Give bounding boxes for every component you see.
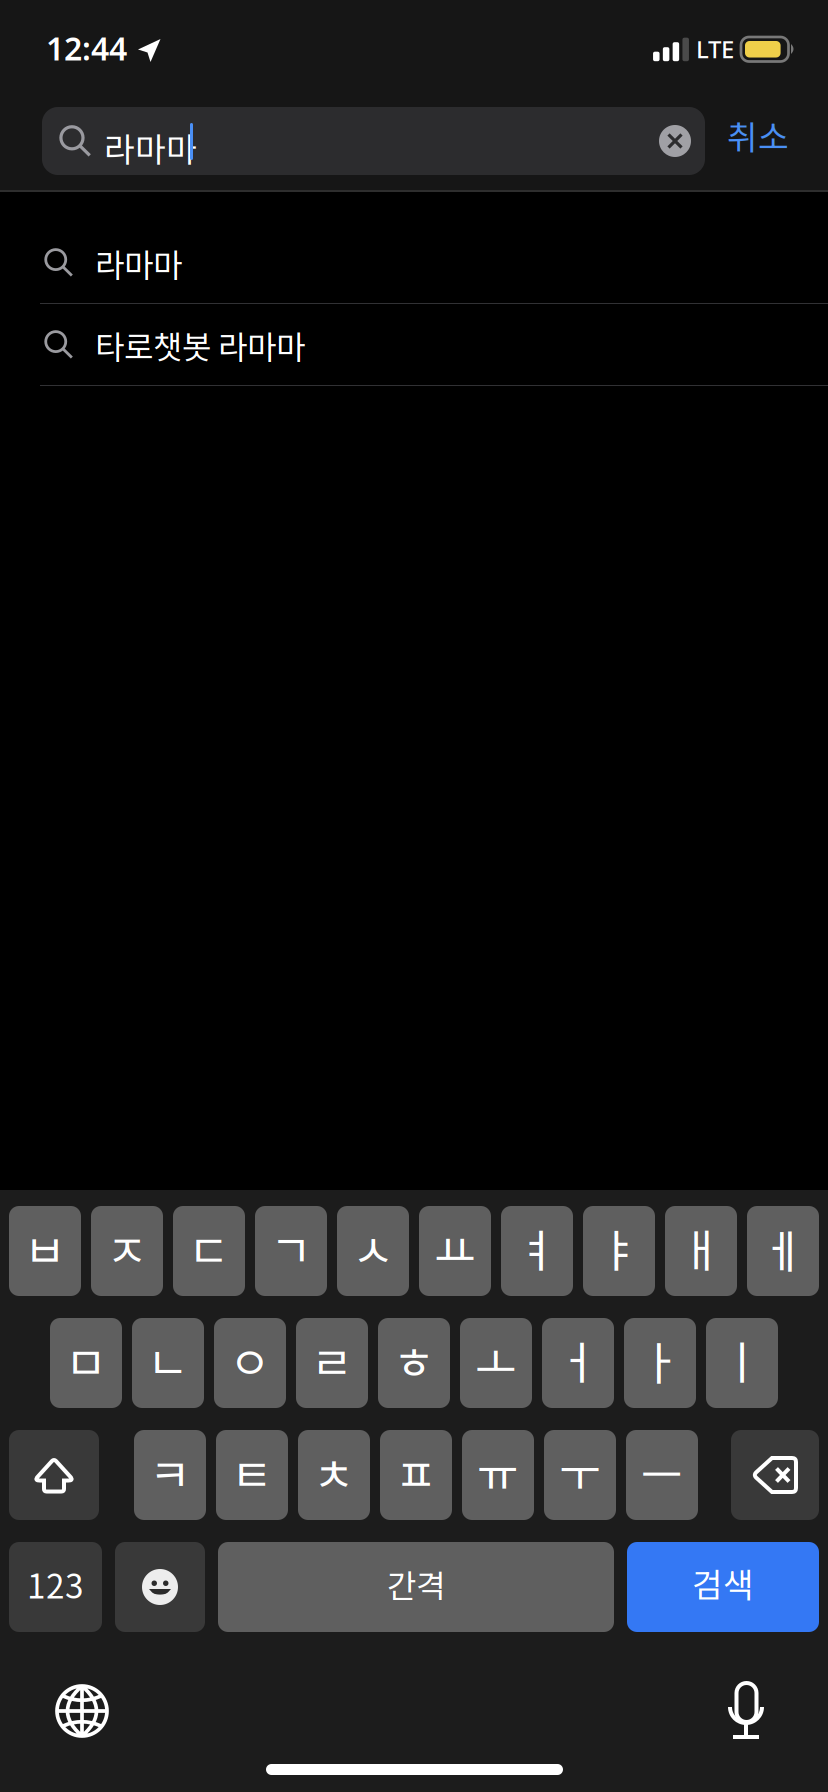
staticText: ㅌ (231, 1439, 273, 1505)
button[interactable]: ㅓ (542, 1318, 614, 1408)
staticText: ㅎ (393, 1327, 435, 1393)
button[interactable]: ㅈ (91, 1206, 163, 1296)
button[interactable]: Switch keyboard (39, 1668, 125, 1754)
button[interactable]: ㅍ (380, 1430, 452, 1520)
staticText: ㅔ (762, 1215, 804, 1281)
button[interactable]: ㅏ (624, 1318, 696, 1408)
staticText: ㅍ (395, 1439, 437, 1505)
staticText: ㄹ (311, 1327, 353, 1393)
staticText: 123 (27, 1560, 84, 1608)
staticText: 라마마 (95, 240, 182, 286)
button[interactable]: 타로챗봇 라마마 (0, 304, 828, 386)
staticText: ㅂ (24, 1215, 66, 1281)
staticText: 12:44 (46, 27, 127, 69)
staticText: ㄷ (188, 1215, 230, 1281)
button[interactable]: ㄱ (255, 1206, 327, 1296)
staticText: ㅇ (229, 1327, 271, 1393)
button[interactable]: ㅜ (544, 1430, 616, 1520)
staticText: ㅜ (559, 1439, 601, 1505)
button[interactable]: ㄴ (132, 1318, 204, 1408)
button[interactable]: ㅂ (9, 1206, 81, 1296)
staticText: ㅛ (434, 1215, 476, 1281)
staticText: ㅠ (477, 1439, 519, 1505)
staticText: ㅋ (149, 1439, 191, 1505)
button[interactable]: ㅁ (50, 1318, 122, 1408)
button[interactable]: Dictation (703, 1668, 789, 1754)
staticText: ㅏ (639, 1327, 681, 1393)
staticText: ㅕ (516, 1215, 558, 1281)
button[interactable]: 123 (9, 1542, 102, 1632)
staticText: ㄴ (147, 1327, 189, 1393)
button[interactable]: ㅑ (583, 1206, 655, 1296)
button[interactable]: 라마마 (0, 222, 828, 304)
button[interactable]: ㄷ (173, 1206, 245, 1296)
staticText: 간격 (387, 1561, 445, 1607)
staticText: 타로챗봇 라마마 (95, 322, 305, 368)
button[interactable]: ㅊ (298, 1430, 370, 1520)
button[interactable]: Shift (9, 1430, 99, 1520)
staticText: LTE (696, 33, 734, 65)
staticText: ㅊ (313, 1439, 355, 1505)
staticText: ㅓ (557, 1327, 599, 1393)
staticText: ㅈ (106, 1215, 148, 1281)
button[interactable]: ㅌ (216, 1430, 288, 1520)
button[interactable]: 간격 (218, 1542, 614, 1632)
staticText: ㄱ (270, 1215, 312, 1281)
button[interactable]: ㅛ (419, 1206, 491, 1296)
button[interactable]: ㅗ (460, 1318, 532, 1408)
button[interactable]: ㅇ (214, 1318, 286, 1408)
staticText: ㅣ (721, 1327, 763, 1393)
staticText: 검색 (692, 1559, 754, 1607)
button[interactable]: ㅕ (501, 1206, 573, 1296)
button[interactable]: ㅋ (134, 1430, 206, 1520)
button[interactable]: ㅣ (706, 1318, 778, 1408)
staticText: ㅑ (598, 1215, 640, 1281)
button[interactable]: Clear text (641, 107, 709, 175)
staticText: ㅐ (680, 1215, 722, 1281)
button[interactable]: Emoji (115, 1542, 205, 1632)
button[interactable]: Delete (731, 1430, 819, 1520)
button[interactable]: ㅡ (626, 1430, 698, 1520)
button[interactable]: ㅔ (747, 1206, 819, 1296)
button[interactable]: 취소 (706, 101, 810, 169)
staticText: 라마마 (104, 123, 197, 171)
button[interactable]: ㅠ (462, 1430, 534, 1520)
button[interactable]: ㅅ (337, 1206, 409, 1296)
staticText: ㅗ (475, 1327, 517, 1393)
staticText: 취소 (727, 111, 789, 159)
button[interactable]: ㅎ (378, 1318, 450, 1408)
button[interactable]: ㄹ (296, 1318, 368, 1408)
staticText: ㅅ (352, 1215, 394, 1281)
button[interactable]: ㅐ (665, 1206, 737, 1296)
staticText: ㅁ (65, 1327, 107, 1393)
button[interactable]: 검색 (627, 1542, 819, 1632)
staticText: ㅡ (641, 1439, 683, 1505)
